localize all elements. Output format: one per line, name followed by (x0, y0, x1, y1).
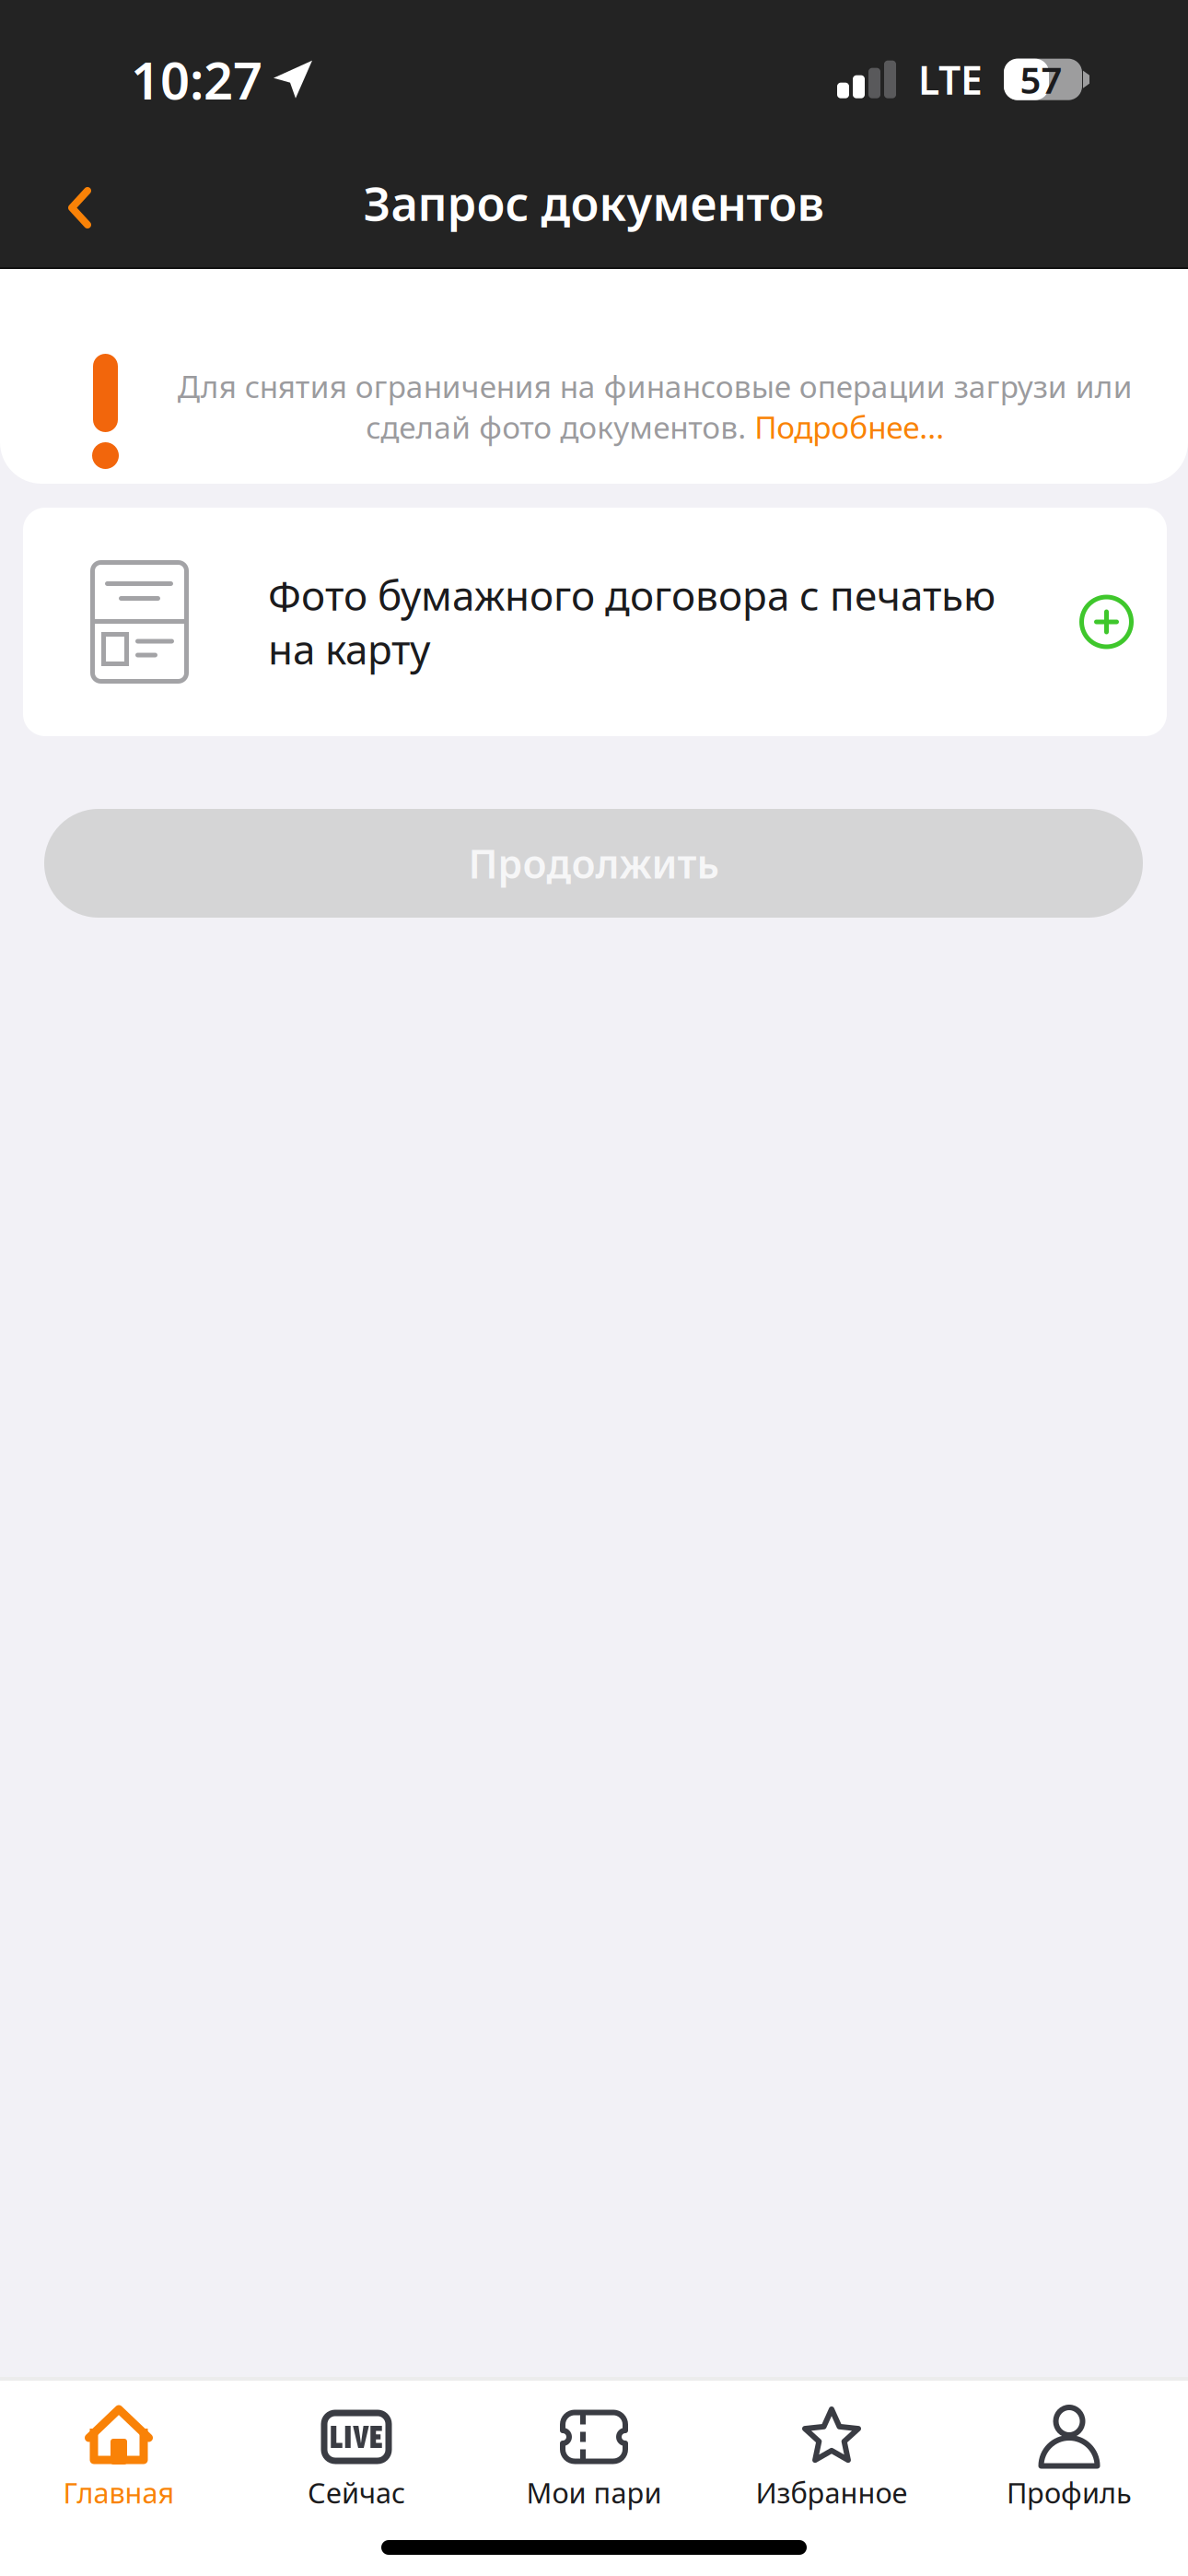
button[interactable]: Продолжить (44, 809, 1143, 918)
button[interactable]: Назад (0, 134, 160, 267)
staticText: Мои пари (526, 2474, 662, 2511)
staticText: Запрос документов (363, 172, 825, 234)
staticText: 57 (1020, 55, 1062, 104)
staticText: Профиль (1007, 2474, 1132, 2511)
staticText: Для снятия ограничения на финансовые опе… (177, 366, 1132, 447)
button[interactable]: Сейчас (238, 2405, 475, 2529)
button[interactable]: Избранное (713, 2405, 950, 2529)
button[interactable]: Мои пари (475, 2405, 713, 2529)
button[interactable]: Фото бумажного договора с печатью на кар… (23, 508, 1167, 736)
button[interactable]: Главная (0, 2405, 238, 2529)
button[interactable]: Профиль (950, 2405, 1188, 2529)
staticText: Продолжить (468, 837, 719, 889)
staticText: LTE (918, 53, 983, 106)
staticText: Фото бумажного договора с печатью на кар… (268, 568, 996, 676)
staticText: Сейчас (308, 2474, 405, 2511)
button[interactable]: Для снятия ограничения на финансовые опе… (0, 269, 1134, 447)
staticText: Избранное (756, 2474, 908, 2511)
staticText: 10:27 (131, 45, 262, 114)
staticText: Главная (63, 2474, 175, 2511)
